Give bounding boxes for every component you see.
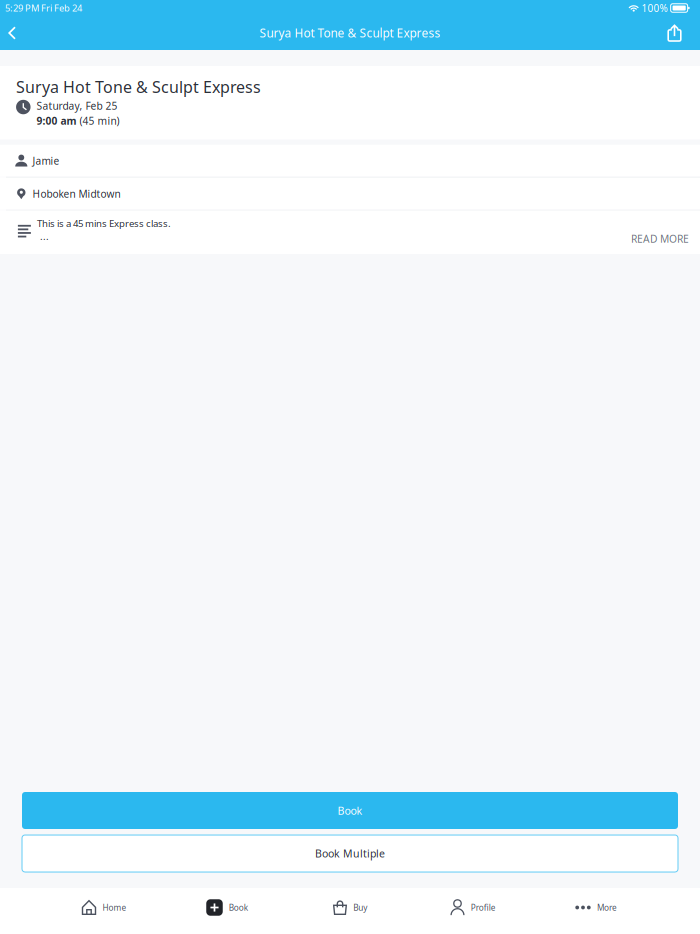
button[interactable]: Book Multiple bbox=[22, 835, 678, 872]
staticText: Surya Hot Tone & Sculpt Express bbox=[259, 25, 440, 41]
staticText: (45 min) bbox=[80, 114, 120, 128]
staticText: ... bbox=[40, 230, 49, 243]
staticText: Profile bbox=[471, 902, 496, 913]
staticText: Jamie bbox=[33, 154, 60, 168]
staticText: Home bbox=[102, 902, 126, 913]
staticText: Surya Hot Tone & Sculpt Express bbox=[16, 76, 261, 98]
staticText: Book bbox=[337, 803, 362, 818]
button[interactable]: More bbox=[534, 888, 657, 934]
button[interactable]: Profile bbox=[411, 888, 534, 934]
button[interactable]: Home bbox=[42, 888, 165, 934]
staticText: 5:29 PM Fri Feb 24 bbox=[5, 2, 82, 14]
staticText: More bbox=[597, 902, 617, 913]
staticText: 100% bbox=[641, 1, 667, 15]
staticText: This is a 45 mins Express class. bbox=[37, 217, 171, 230]
staticText: Book Multiple bbox=[315, 846, 385, 861]
button[interactable]: Jamie bbox=[0, 145, 700, 177]
staticText: READ MORE bbox=[631, 232, 689, 246]
staticText: Book bbox=[229, 902, 248, 913]
button[interactable]: Hoboken Midtown bbox=[0, 178, 700, 210]
button[interactable]: Buy bbox=[288, 888, 411, 934]
button[interactable]: Book bbox=[22, 792, 678, 829]
button[interactable]: Book bbox=[165, 888, 288, 934]
staticText: Buy bbox=[353, 902, 367, 913]
staticText: 9:00 am bbox=[37, 114, 77, 128]
staticText: Hoboken Midtown bbox=[33, 187, 121, 201]
button[interactable]: Share bbox=[655, 16, 700, 50]
staticText: Saturday, Feb 25 bbox=[37, 99, 118, 113]
button[interactable]: READ MORE bbox=[615, 211, 700, 253]
button[interactable]: Back bbox=[0, 16, 24, 50]
